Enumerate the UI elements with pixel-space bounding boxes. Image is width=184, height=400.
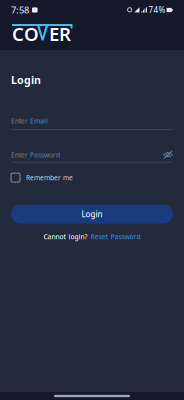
staticText: Enter Password	[11, 150, 60, 159]
staticText: ER	[49, 21, 71, 46]
staticText: Reset Password	[90, 232, 140, 241]
button[interactable]: Show password	[163, 150, 173, 159]
staticText: Login	[11, 73, 41, 87]
staticText: CO	[12, 21, 39, 46]
button[interactable]: Remember me	[11, 173, 173, 183]
staticText: Enter Email	[11, 117, 48, 125]
button[interactable]: Reset Password	[87, 232, 140, 241]
staticText: Cannot login?	[43, 232, 87, 241]
button[interactable]: Login	[11, 205, 173, 224]
staticText: Login	[81, 209, 102, 219]
staticText: 7:58	[11, 4, 29, 16]
staticText: Remember me	[26, 173, 73, 182]
staticText: 74%	[149, 5, 166, 15]
